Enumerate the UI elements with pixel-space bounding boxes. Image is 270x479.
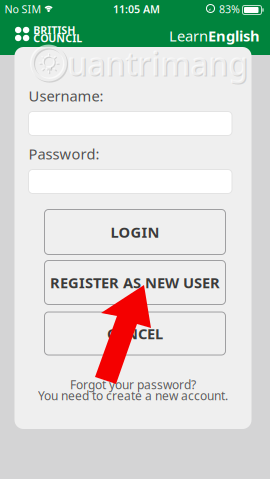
staticText: Learn — [169, 26, 208, 45]
staticText: Password: — [28, 144, 99, 163]
staticText: You need to create a new account. — [38, 387, 228, 403]
staticText: uantrimang — [67, 42, 248, 84]
staticText: Forgot your password? — [70, 376, 196, 392]
staticText: REGISTER AS NEW USER — [50, 273, 220, 292]
staticText: English — [208, 26, 260, 45]
button[interactable]: CANCEL — [44, 312, 225, 355]
staticText: COUNCIL — [33, 31, 82, 45]
staticText: CANCEL — [107, 324, 163, 343]
staticText: uantrimang — [68, 43, 249, 85]
button[interactable]: LOGIN — [44, 209, 225, 254]
staticText: BRITISH — [33, 23, 75, 37]
staticText: LOGIN — [110, 222, 159, 242]
button[interactable]: REGISTER AS NEW USER — [44, 260, 225, 304]
staticText: 11:05 AM — [113, 2, 160, 16]
staticText: No SIM — [4, 2, 41, 16]
staticText: 83% — [219, 2, 240, 16]
staticText: Username: — [28, 86, 103, 105]
